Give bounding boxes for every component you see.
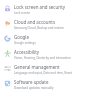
staticText: Vision, Hearing, Dexterity and interacti… <box>14 56 71 60</box>
button[interactable]: General management <box>0 61 90 76</box>
staticText: General management <box>14 64 60 70</box>
button[interactable]: Software update <box>0 76 90 90</box>
staticText: Accessibility <box>14 49 40 55</box>
button[interactable]: Cloud and accounts <box>0 16 90 31</box>
staticText: Lock screen <box>14 11 31 15</box>
button[interactable]: Google <box>0 31 90 46</box>
staticText: Software update <box>14 79 49 85</box>
staticText: Google <box>14 34 29 40</box>
staticText: Lock screen and security <box>14 4 66 10</box>
staticText: Cloud and accounts <box>14 19 56 25</box>
staticText: Samsung Cloud, Backup and restore <box>14 26 65 30</box>
staticText: Language and input, Date and time, Reset <box>14 71 73 75</box>
staticText: Download updates manually <box>14 86 54 90</box>
staticText: Google settings <box>14 41 36 45</box>
button[interactable]: Accessibility <box>0 46 90 61</box>
button[interactable]: Lock screen and security <box>0 1 90 16</box>
